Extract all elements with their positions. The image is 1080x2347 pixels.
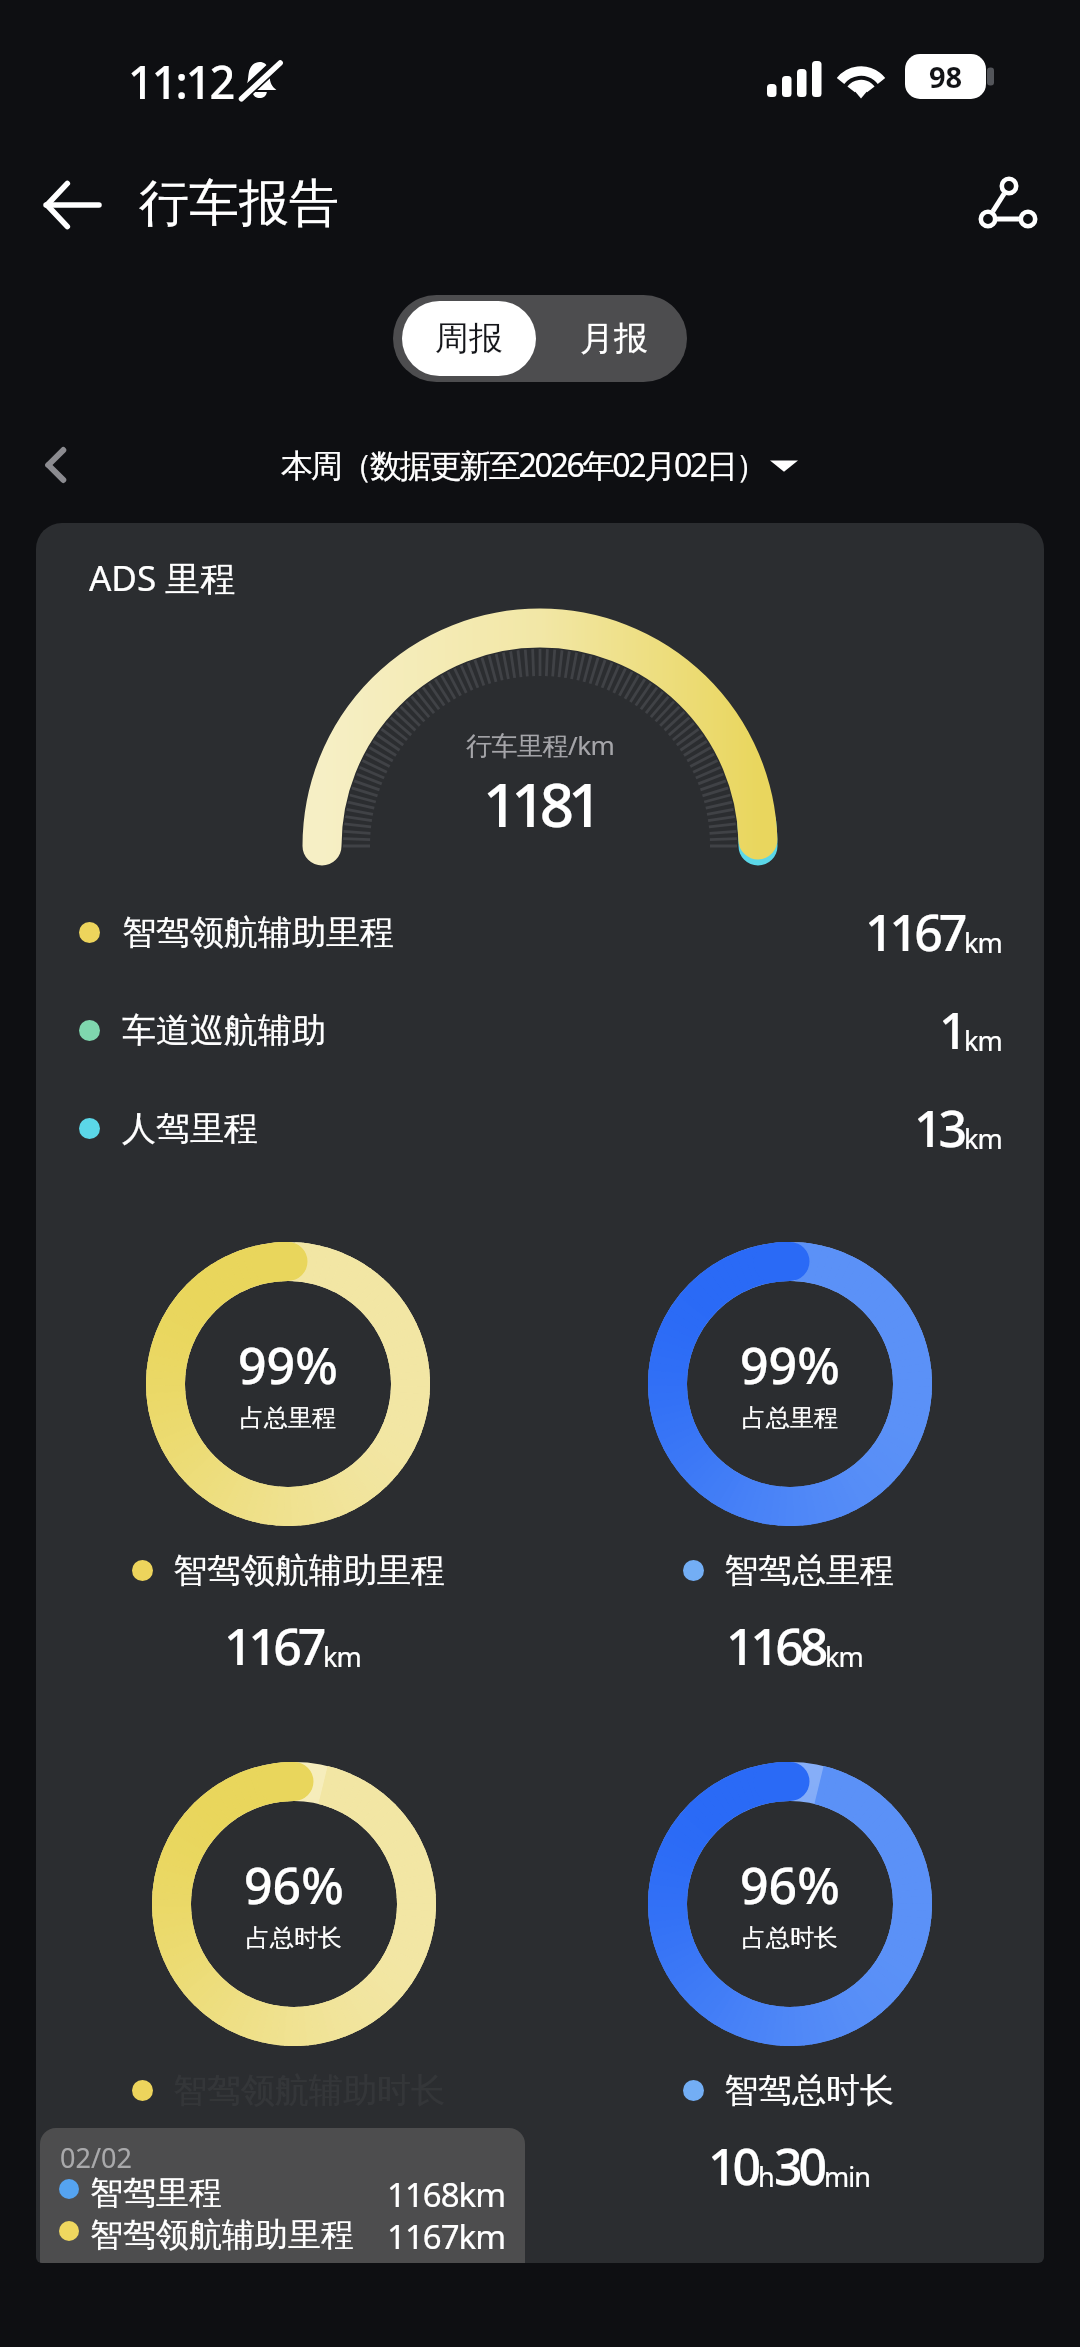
staticText: 30 bbox=[774, 2132, 824, 2200]
staticText: 99% bbox=[740, 1331, 840, 1399]
button[interactable]: Share bbox=[958, 159, 1046, 247]
staticText: h bbox=[758, 2158, 774, 2195]
staticText: 智驾领航辅助里程 bbox=[122, 911, 394, 954]
staticText: 1168 bbox=[726, 1612, 825, 1680]
button[interactable]: 智驾领航辅助里程 bbox=[36, 890, 1044, 974]
button[interactable]: 周报 bbox=[402, 301, 536, 376]
staticText: km bbox=[825, 1638, 863, 1675]
staticText: 99% bbox=[238, 1331, 338, 1399]
button[interactable]: 本周（数据更新至2026年02月02日） bbox=[281, 443, 798, 487]
staticText: 周报 bbox=[435, 317, 503, 360]
staticText: ADS 里程 bbox=[89, 554, 236, 602]
staticText: 智驾里程 bbox=[90, 2172, 222, 2214]
button[interactable]: 车道巡航辅助 bbox=[36, 988, 1044, 1072]
staticText: 月报 bbox=[580, 317, 648, 360]
staticText: 占总时长 bbox=[742, 1923, 838, 1953]
staticText: 行车里程/km bbox=[466, 727, 615, 763]
staticText: 智驾总里程 bbox=[724, 1549, 894, 1592]
button[interactable]: Previous week bbox=[36, 443, 80, 487]
button[interactable]: 人驾里程 bbox=[36, 1086, 1044, 1170]
staticText: 行车报告 bbox=[139, 172, 339, 235]
staticText: 智驾总时长 bbox=[724, 2069, 894, 2112]
staticText: 1167 bbox=[865, 898, 964, 966]
staticText: 智驾领航辅助时长 bbox=[173, 2069, 445, 2112]
staticText: min bbox=[824, 2158, 870, 2195]
staticText: 本周（数据更新至2026年02月02日） bbox=[281, 443, 766, 487]
staticText: 96% bbox=[244, 1851, 344, 1919]
button[interactable]: 智驾领航辅助里程 bbox=[132, 1549, 445, 1592]
button[interactable]: 月报 bbox=[540, 295, 687, 382]
staticText: 98 bbox=[929, 57, 963, 96]
staticText: 96% bbox=[740, 1851, 840, 1919]
staticText: 1167 bbox=[224, 1612, 323, 1680]
staticText: 13 bbox=[914, 1094, 964, 1162]
staticText: 占总里程 bbox=[240, 1403, 336, 1433]
staticText: 02/02 bbox=[60, 2139, 132, 2176]
staticText: 10 bbox=[708, 2132, 758, 2200]
button[interactable]: 智驾总时长 bbox=[683, 2069, 894, 2112]
button[interactable]: 智驾总里程 bbox=[683, 1549, 894, 1592]
staticText: 智驾领航辅助里程 bbox=[173, 1549, 445, 1592]
button[interactable]: 智驾领航辅助时长 bbox=[132, 2069, 445, 2112]
staticText: km bbox=[964, 1120, 1002, 1157]
staticText: 占总里程 bbox=[742, 1403, 838, 1433]
staticText: 1181 bbox=[483, 763, 597, 845]
staticText: 10 bbox=[218, 2132, 268, 2200]
staticText: 1 bbox=[939, 996, 964, 1064]
staticText: 11:12 bbox=[128, 51, 234, 112]
staticText: km bbox=[964, 1022, 1002, 1059]
button[interactable]: Back bbox=[28, 164, 116, 252]
staticText: 车道巡航辅助 bbox=[122, 1009, 326, 1052]
staticText: 1167km bbox=[387, 2214, 505, 2259]
staticText: 占总时长 bbox=[246, 1923, 342, 1953]
staticText: 人驾里程 bbox=[122, 1107, 258, 1150]
staticText: 智驾领航辅助里程 bbox=[90, 2214, 354, 2256]
staticText: km bbox=[323, 1638, 361, 1675]
staticText: km bbox=[964, 924, 1002, 961]
staticText: 1168km bbox=[387, 2172, 505, 2217]
